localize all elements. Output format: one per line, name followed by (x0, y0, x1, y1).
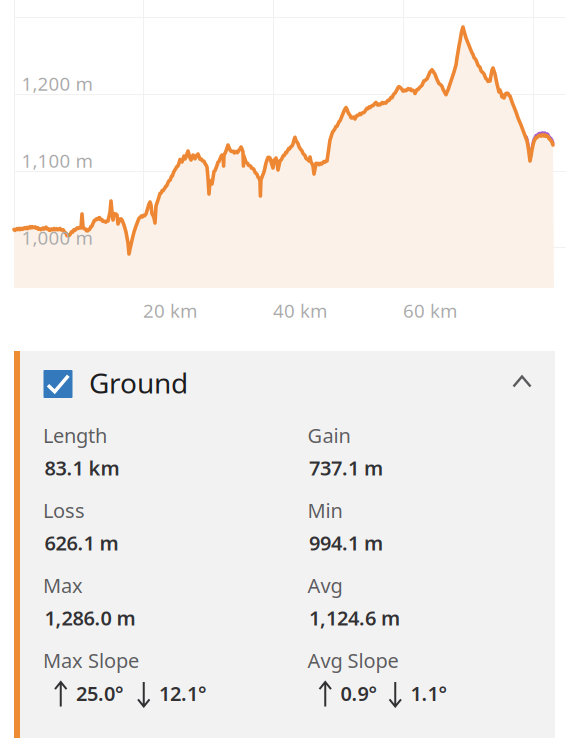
staticText: 1.1° (410, 680, 447, 707)
staticText: 25.0° (76, 680, 124, 707)
staticText: 994.1 m (309, 529, 383, 556)
staticText: Avg (307, 572, 342, 599)
staticText: 12.1° (159, 680, 207, 707)
staticText: 20 km (143, 298, 197, 323)
staticText: 1,000 m (21, 225, 92, 250)
staticText: Length (43, 422, 107, 449)
staticText: 83.1 km (44, 454, 119, 481)
staticText: 40 km (273, 298, 327, 323)
button[interactable]: Collapse Ground section (499, 362, 544, 400)
staticText: Avg Slope (307, 647, 398, 674)
staticText: Gain (307, 422, 350, 449)
staticText: 0.9° (340, 680, 377, 707)
staticText: Max (43, 572, 83, 599)
staticText: 1,124.6 m (309, 604, 400, 631)
staticText: Loss (43, 497, 85, 524)
staticText: Max Slope (43, 647, 139, 674)
staticText: Ground (89, 364, 188, 401)
staticText: 737.1 m (309, 454, 383, 481)
staticText: 1,286.0 m (44, 604, 135, 631)
staticText: 1,100 m (21, 148, 92, 173)
staticText: Min (307, 497, 342, 524)
staticText: 1,200 m (21, 71, 92, 96)
button[interactable]: Ground (22, 353, 452, 411)
staticText: 626.1 m (44, 529, 118, 556)
staticText: 60 km (403, 298, 457, 323)
